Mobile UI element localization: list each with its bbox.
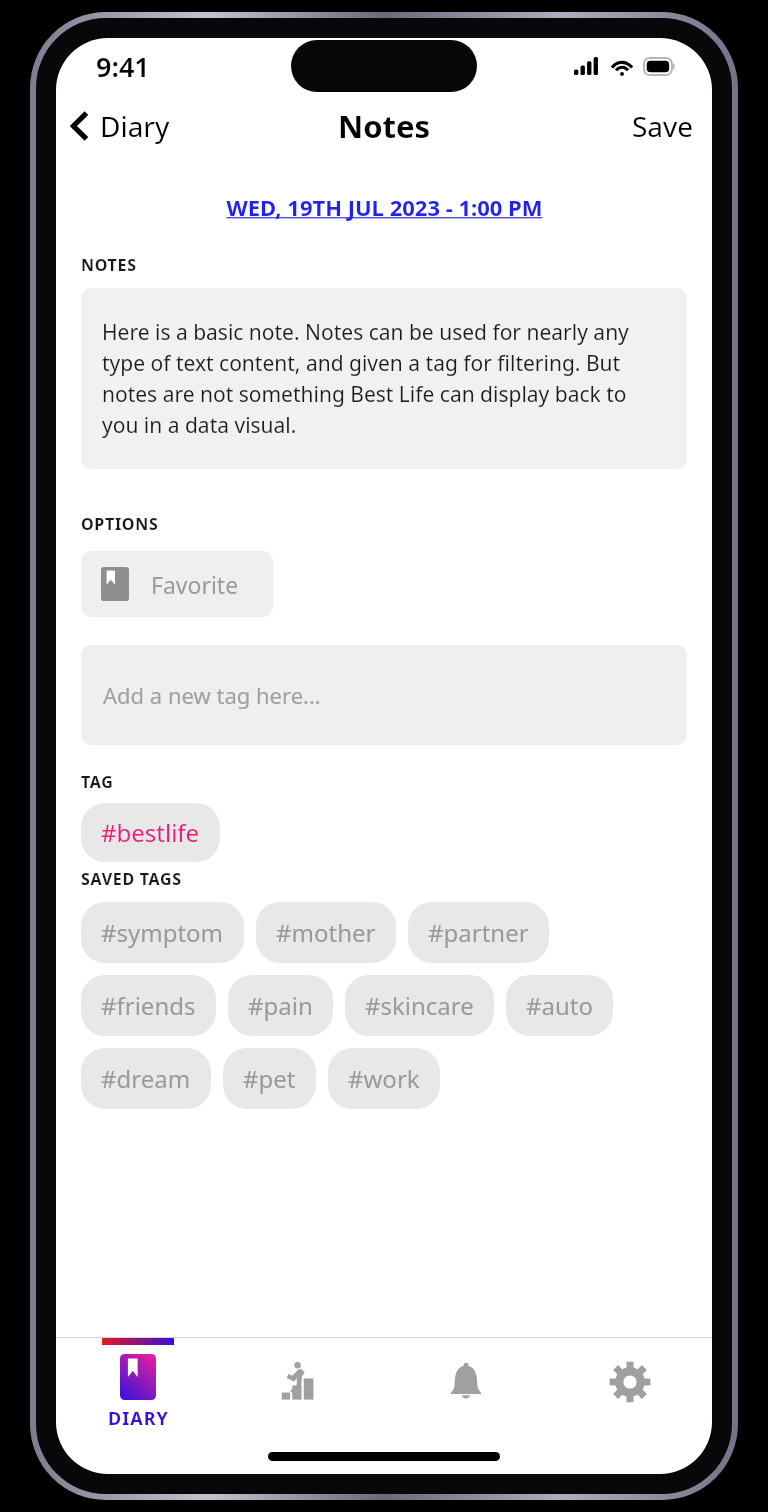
button[interactable]: #work xyxy=(328,1048,440,1109)
staticText: 9:41 xyxy=(96,48,150,85)
staticText: DIARY xyxy=(108,1406,169,1431)
button[interactable]: DIARY xyxy=(56,1338,220,1438)
staticText: Favorite xyxy=(151,569,239,600)
button[interactable]: Save xyxy=(618,99,712,153)
staticText: #dream xyxy=(101,1062,191,1095)
button[interactable]: #partner xyxy=(408,902,549,963)
button[interactable]: #dream xyxy=(81,1048,211,1109)
staticText: #bestlife xyxy=(101,816,200,849)
button[interactable]: #skincare xyxy=(345,975,494,1036)
button[interactable]: #mother xyxy=(256,902,396,963)
button[interactable]: Here is a basic note. Notes can be used … xyxy=(81,288,687,469)
staticText: #auto xyxy=(526,989,593,1022)
button[interactable]: #pain xyxy=(228,975,333,1036)
staticText: Notes xyxy=(338,105,431,147)
staticText: #partner xyxy=(428,916,529,949)
staticText: #skincare xyxy=(365,989,474,1022)
staticText: #pet xyxy=(243,1062,296,1095)
button[interactable]: #symptom xyxy=(81,902,244,963)
staticText: #pain xyxy=(248,989,313,1022)
button[interactable]: #auto xyxy=(506,975,613,1036)
button[interactable]: Activity xyxy=(220,1338,384,1438)
button[interactable]: Favorite xyxy=(81,551,273,617)
button[interactable]: Add a new tag here... xyxy=(81,645,687,745)
button[interactable]: Settings xyxy=(548,1338,712,1438)
staticText: #symptom xyxy=(101,916,224,949)
staticText: Add a new tag here... xyxy=(103,680,321,710)
staticText: Diary xyxy=(100,107,170,145)
button[interactable]: Diary xyxy=(56,99,182,153)
staticText: TAG xyxy=(81,771,114,793)
button[interactable]: #bestlife xyxy=(81,803,220,862)
staticText: Here is a basic note. Notes can be used … xyxy=(102,318,666,439)
staticText: SAVED TAGS xyxy=(81,868,182,890)
button[interactable]: Reminders xyxy=(384,1338,548,1438)
staticText: OPTIONS xyxy=(81,513,159,535)
button[interactable]: #friends xyxy=(81,975,216,1036)
button[interactable]: #pet xyxy=(223,1048,316,1109)
staticText: NOTES xyxy=(81,254,137,276)
staticText: #work xyxy=(348,1062,420,1095)
staticText: #friends xyxy=(101,989,196,1022)
button[interactable]: WED, 19TH JUL 2023 - 1:00 PM xyxy=(216,188,553,226)
staticText: #mother xyxy=(276,916,376,949)
